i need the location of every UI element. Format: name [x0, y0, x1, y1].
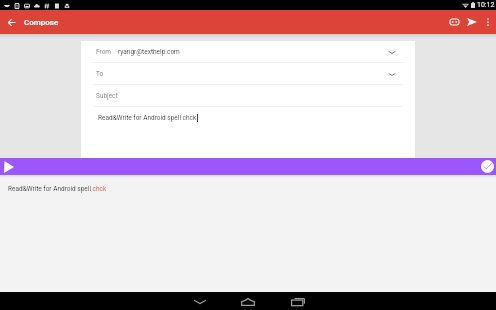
button[interactable]: Send: [463, 10, 481, 34]
button[interactable]: From: [81, 41, 415, 63]
staticText: From: [96, 48, 112, 56]
staticText: To: [96, 70, 104, 78]
button[interactable]: To: [81, 63, 415, 85]
button[interactable]: Done: [481, 160, 494, 173]
staticText: Read&Write for Android spell chck: [98, 114, 197, 122]
button[interactable]: Home: [224, 292, 272, 310]
button[interactable]: Back: [176, 292, 224, 310]
staticText: 10:12: [477, 1, 495, 9]
staticText: Compose: [24, 18, 59, 27]
button[interactable]: Spell check: [445, 10, 463, 34]
staticText: Subject: [96, 92, 118, 100]
staticText: ryangr@texthelp.com: [118, 48, 180, 56]
button[interactable]: More options: [481, 10, 495, 34]
button[interactable]: Subject: [81, 85, 415, 107]
button[interactable]: Recent apps: [272, 292, 320, 310]
staticText: Read&Write for Android spell chck: [8, 185, 107, 193]
button[interactable]: Play: [2, 158, 16, 175]
button[interactable]: Back: [2, 10, 20, 34]
